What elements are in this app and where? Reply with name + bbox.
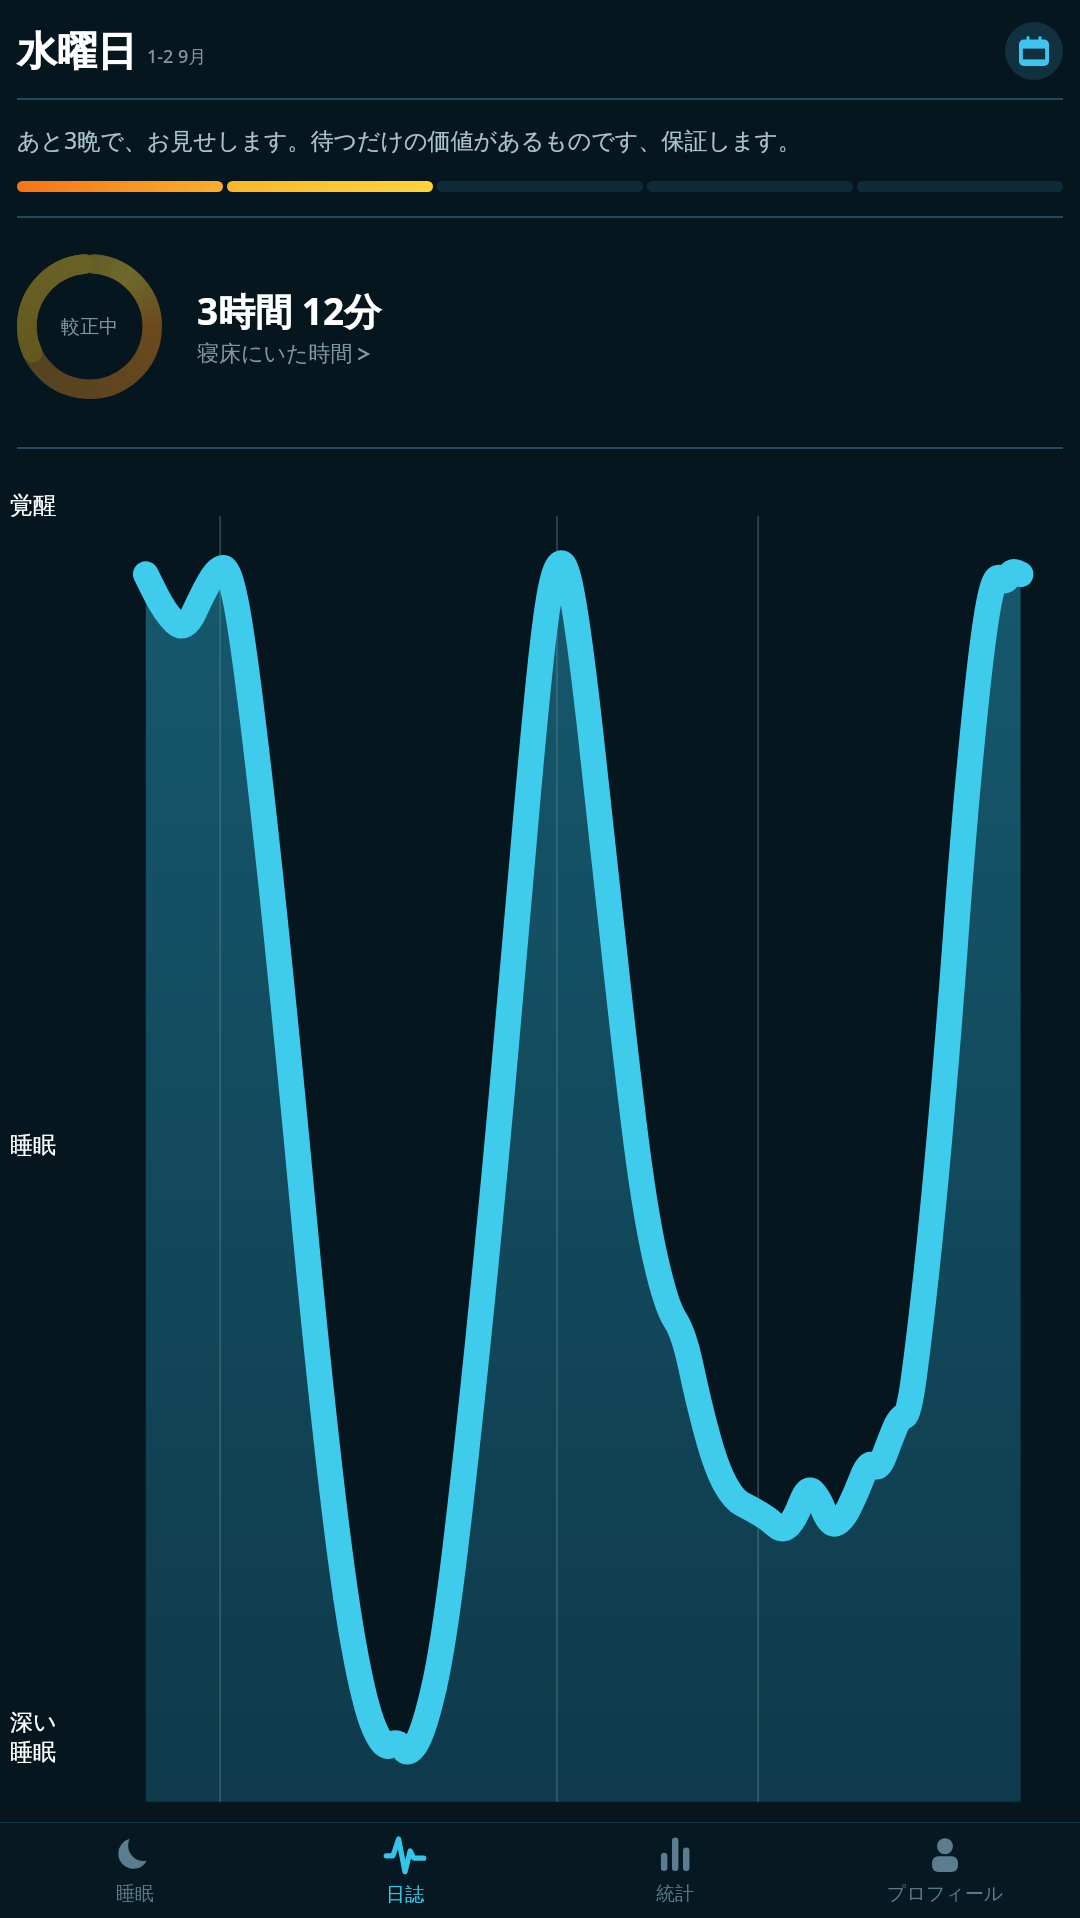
staticText: 日誌 <box>386 1883 424 1907</box>
staticText: 水曜日 <box>17 26 137 76</box>
staticText: 寝床にいた時間 <box>197 340 353 368</box>
staticText: 覚醒 <box>10 491 56 520</box>
button[interactable]: プロフィール <box>810 1830 1080 1912</box>
staticText: 統計 <box>656 1882 694 1906</box>
button[interactable]: 睡眠 <box>0 1830 270 1912</box>
button[interactable]: 3時間 12分 <box>197 285 382 368</box>
button[interactable]: 統計 <box>540 1830 810 1912</box>
staticText: 睡眠 <box>116 1882 154 1906</box>
staticText: 睡眠 <box>10 1131 56 1160</box>
staticText: 1-2 9月 <box>147 44 207 69</box>
staticText: あと3晩で、お見せします。待つだけの価値があるものです、保証します。 <box>17 124 802 155</box>
staticText: 深い 睡眠 <box>10 1708 57 1767</box>
button[interactable]: 日誌 <box>270 1829 540 1913</box>
staticText: 3時間 12分 <box>197 285 382 336</box>
staticText: 較正中 <box>61 315 118 339</box>
button[interactable]: Calendar <box>1005 22 1063 80</box>
staticText: プロフィール <box>887 1882 1004 1906</box>
